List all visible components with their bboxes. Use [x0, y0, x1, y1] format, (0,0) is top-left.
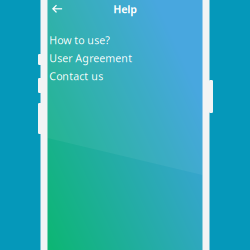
- button[interactable]: User Agreement: [47, 49, 202, 67]
- staticText: Contact us: [49, 69, 103, 83]
- button[interactable]: Back: [48, 0, 66, 18]
- staticText: User Agreement: [49, 51, 132, 65]
- staticText: How to use?: [49, 33, 110, 47]
- staticText: Help: [113, 2, 137, 16]
- button[interactable]: Contact us: [47, 67, 202, 85]
- button[interactable]: How to use?: [47, 31, 202, 49]
